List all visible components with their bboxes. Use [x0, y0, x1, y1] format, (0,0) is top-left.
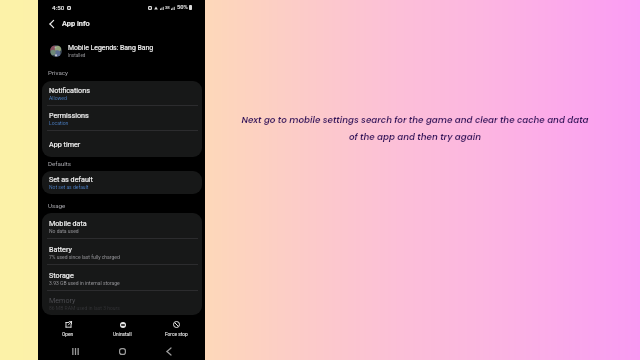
- button[interactable]: Storage: [42, 265, 202, 291]
- staticText: 86 MB RAM used in last 3 hours: [49, 305, 120, 311]
- staticText: Not set as default: [49, 184, 89, 190]
- staticText: Notifications: [49, 86, 90, 94]
- staticText: Privacy: [48, 69, 68, 76]
- staticText: Mobile data: [49, 219, 87, 227]
- staticText: 7% used since last fully charged: [49, 254, 120, 260]
- staticText: 38: [165, 5, 170, 10]
- staticText: Open: [62, 332, 74, 338]
- button[interactable]: Back: [152, 342, 186, 360]
- staticText: App timer: [49, 140, 81, 148]
- staticText: Installed: [68, 53, 86, 58]
- staticText: 4:50: [52, 4, 65, 11]
- button[interactable]: Recent apps: [58, 342, 92, 360]
- staticText: Force stop: [165, 332, 188, 338]
- staticText: 50%: [177, 4, 188, 11]
- button[interactable]: Battery: [42, 239, 202, 265]
- button[interactable]: Notifications: [42, 81, 202, 106]
- button[interactable]: Force stop: [154, 317, 198, 340]
- button[interactable]: Uninstall: [100, 317, 144, 340]
- staticText: No data used: [49, 228, 79, 234]
- staticText: Next go to mobile settings search for th…: [241, 114, 589, 144]
- staticText: Set as default: [49, 175, 93, 183]
- button[interactable]: Permissions: [42, 106, 202, 131]
- staticText: Mobile Legends: Bang Bang: [68, 44, 154, 52]
- button[interactable]: Home: [105, 342, 139, 360]
- staticText: Allowed: [49, 95, 67, 101]
- button[interactable]: Back: [43, 15, 60, 32]
- button[interactable]: Set as default: [42, 171, 202, 194]
- staticText: Permissions: [49, 111, 89, 119]
- staticText: Memory: [49, 296, 76, 304]
- staticText: Defaults: [48, 160, 71, 167]
- button[interactable]: Open: [46, 317, 90, 340]
- button[interactable]: Mobile data: [42, 213, 202, 239]
- staticText: App info: [62, 19, 90, 28]
- staticText: Location: [49, 120, 69, 126]
- staticText: Uninstall: [113, 332, 132, 338]
- staticText: Battery: [49, 245, 72, 253]
- staticText: Storage: [49, 271, 74, 279]
- button[interactable]: Memory: [42, 291, 202, 315]
- staticText: Usage: [48, 202, 66, 209]
- staticText: 3.93 GB used in internal storage: [49, 280, 120, 286]
- button[interactable]: App timer: [42, 131, 202, 156]
